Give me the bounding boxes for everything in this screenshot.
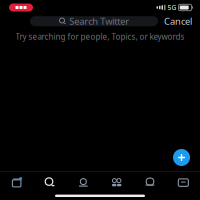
staticText: Try searching for people, Topics, or key… (15, 31, 184, 42)
button[interactable]: Notifications (133, 173, 167, 193)
staticText: Search Twitter (69, 15, 129, 27)
button[interactable]: Messages (167, 173, 200, 193)
staticText: 5G (167, 3, 176, 12)
button[interactable]: Grok (67, 173, 100, 193)
button[interactable]: Search (33, 173, 67, 193)
button[interactable]: Home (0, 173, 33, 193)
button[interactable]: Communities (100, 173, 133, 193)
button[interactable]: Cancel (164, 15, 192, 27)
button[interactable]: Search Twitter (30, 16, 158, 26)
staticText: Cancel (164, 15, 192, 27)
button[interactable]: Compose (173, 149, 190, 166)
